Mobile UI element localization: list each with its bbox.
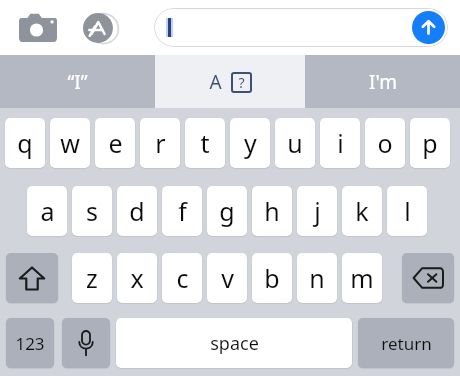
button[interactable]: z bbox=[72, 253, 112, 303]
button[interactable]: e bbox=[95, 118, 135, 168]
staticText: y bbox=[244, 126, 257, 160]
button[interactable]: w bbox=[50, 118, 90, 168]
staticText: g bbox=[219, 194, 235, 228]
button[interactable]: I'm bbox=[305, 55, 460, 108]
staticText: “I” bbox=[67, 69, 88, 95]
button[interactable]: n bbox=[297, 253, 337, 303]
button[interactable]: App Store bbox=[83, 11, 117, 45]
button[interactable]: x bbox=[117, 253, 157, 303]
staticText: I'm bbox=[369, 69, 397, 95]
staticText: n bbox=[309, 261, 325, 295]
button[interactable]: Backspace bbox=[402, 253, 454, 303]
button[interactable]: return bbox=[358, 318, 454, 368]
button[interactable]: Shift bbox=[6, 253, 58, 303]
button[interactable]: k bbox=[342, 186, 382, 236]
button[interactable]: v bbox=[207, 253, 247, 303]
staticText: p bbox=[422, 126, 438, 160]
staticText: A bbox=[209, 69, 222, 95]
staticText: 123 bbox=[15, 332, 45, 355]
button[interactable]: c bbox=[162, 253, 202, 303]
staticText: u bbox=[287, 126, 303, 160]
button[interactable]: f bbox=[162, 186, 202, 236]
staticText: l bbox=[404, 194, 411, 228]
staticText: space bbox=[210, 331, 259, 356]
staticText: i bbox=[337, 126, 344, 160]
staticText: v bbox=[221, 261, 234, 295]
staticText: ? bbox=[238, 73, 245, 92]
button[interactable]: Send bbox=[154, 8, 448, 47]
staticText: return bbox=[381, 332, 432, 355]
staticText: o bbox=[377, 126, 393, 160]
staticText: h bbox=[264, 194, 280, 228]
staticText: d bbox=[129, 194, 145, 228]
button[interactable]: j bbox=[297, 186, 337, 236]
button[interactable]: r bbox=[140, 118, 180, 168]
button[interactable]: s bbox=[72, 186, 112, 236]
button[interactable]: a bbox=[27, 186, 67, 236]
staticText: t bbox=[200, 126, 210, 160]
staticText: f bbox=[178, 194, 187, 228]
button[interactable]: Dictation bbox=[62, 318, 110, 368]
staticText: w bbox=[60, 126, 80, 160]
staticText: q bbox=[17, 126, 33, 160]
button[interactable]: space bbox=[116, 318, 352, 368]
button[interactable]: b bbox=[252, 253, 292, 303]
button[interactable]: g bbox=[207, 186, 247, 236]
button[interactable]: A bbox=[155, 55, 305, 108]
staticText: j bbox=[314, 194, 321, 228]
staticText: a bbox=[40, 194, 55, 228]
staticText: z bbox=[86, 261, 98, 295]
button[interactable]: p bbox=[410, 118, 450, 168]
button[interactable]: u bbox=[275, 118, 315, 168]
button[interactable]: 123 bbox=[6, 318, 54, 368]
staticText: b bbox=[264, 261, 280, 295]
staticText: k bbox=[355, 194, 369, 228]
button[interactable]: y bbox=[230, 118, 270, 168]
button[interactable]: h bbox=[252, 186, 292, 236]
button[interactable]: d bbox=[117, 186, 157, 236]
staticText: x bbox=[130, 261, 144, 295]
button[interactable]: t bbox=[185, 118, 225, 168]
button[interactable]: “I” bbox=[0, 55, 155, 108]
button[interactable]: Camera bbox=[19, 11, 57, 43]
button[interactable]: o bbox=[365, 118, 405, 168]
button[interactable]: m bbox=[342, 253, 382, 303]
button[interactable]: q bbox=[5, 118, 45, 168]
button[interactable]: Send bbox=[412, 11, 445, 44]
button[interactable]: i bbox=[320, 118, 360, 168]
button[interactable]: l bbox=[387, 186, 427, 236]
staticText: r bbox=[155, 126, 166, 160]
staticText: m bbox=[350, 261, 374, 295]
staticText: c bbox=[176, 261, 189, 295]
staticText: e bbox=[108, 126, 123, 160]
staticText: s bbox=[86, 194, 98, 228]
